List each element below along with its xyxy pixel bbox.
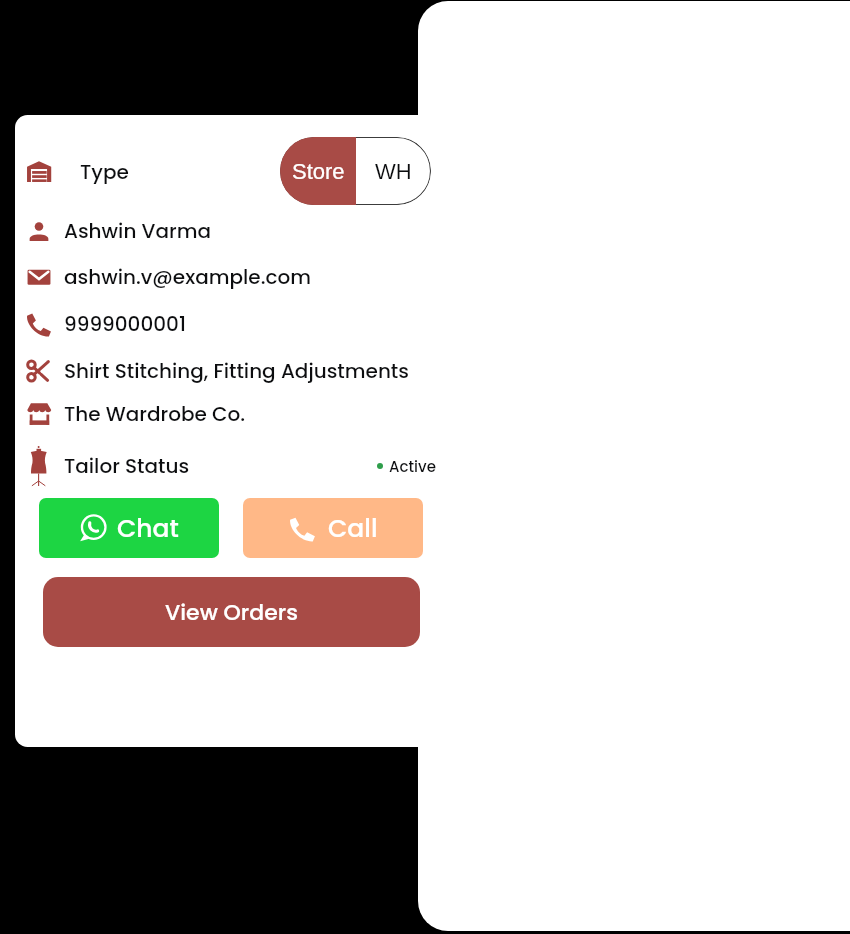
staticText: Chat	[117, 511, 179, 546]
staticText: Shirt Stitching, Fitting Adjustments	[64, 357, 409, 385]
staticText: ashwin.v@example.com	[64, 263, 312, 291]
staticText: Store	[292, 159, 345, 184]
button[interactable]: Chat	[39, 498, 219, 558]
staticText: View Orders	[165, 597, 298, 628]
button[interactable]: Call	[243, 498, 423, 558]
staticText: Tailor Status	[64, 452, 190, 480]
staticText: Active	[389, 456, 436, 477]
other: Warehouse	[26, 160, 52, 186]
staticText: The Wardrobe Co.	[64, 400, 246, 428]
staticText: Call	[328, 511, 378, 546]
staticText: 9999000001	[64, 310, 186, 338]
button[interactable]: View Orders	[43, 577, 420, 647]
button[interactable]: WH	[356, 137, 431, 205]
button[interactable]: Store	[280, 137, 356, 205]
staticText: Type	[80, 158, 129, 186]
staticText: Ashwin Varma	[64, 217, 212, 245]
staticText: WH	[375, 159, 412, 184]
